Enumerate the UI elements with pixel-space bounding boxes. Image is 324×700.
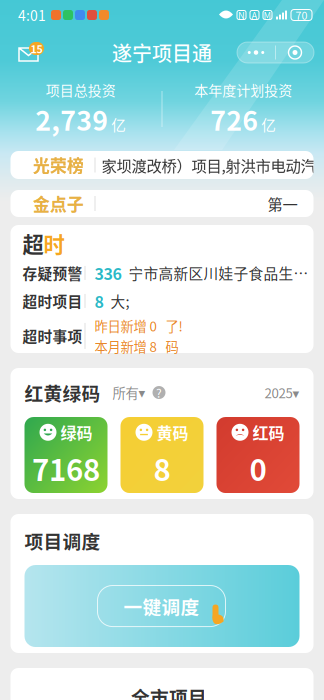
staticText: 金点子 [33,191,84,215]
staticText: 家坝渡改桥）项目,射洪市电动汽车; [101,154,324,176]
button[interactable]: More [237,42,314,63]
staticText: 2025▾ [264,383,299,402]
staticText: 昨日新增 0 了! [94,316,182,335]
staticText: 大; [110,290,129,311]
button[interactable]: 绿码 [24,417,107,493]
staticText: 本月新增 8 码 [94,336,178,356]
staticText: 超时事项 [22,325,82,346]
staticText: 时 [43,228,64,259]
staticText: 宁市高新区川娃子食品生产项目 [128,262,313,283]
staticText: M [263,8,271,22]
staticText: 所有▾ [112,383,145,402]
staticText: 15 [30,41,42,56]
button[interactable]: 红码 [216,417,299,493]
staticText: 2,739 [35,100,108,138]
staticText: 8 [94,289,103,313]
button[interactable]: 2025▾ [264,383,299,402]
staticText: 亿 [111,114,126,135]
button[interactable]: Help [145,386,165,399]
staticText: 金点子 [33,191,84,215]
staticText: 遂宁项目通 [112,38,212,67]
staticText: 第一 [267,192,297,215]
button[interactable]: Messages [12,39,50,65]
staticText: 8 [153,447,170,489]
staticText: 项目总投资 [46,80,116,100]
staticText: 0 [249,447,266,489]
staticText: ? [156,384,162,401]
staticText: 亿 [261,114,276,135]
staticText: 红码 [252,421,284,444]
staticText: N [238,8,245,22]
button[interactable]: 金点子 [10,190,313,217]
staticText: 黄码 [156,421,188,444]
staticText: 绿码 [60,421,92,444]
staticText: 光荣榜 [33,153,84,177]
staticText: 超时项目 [22,290,82,311]
button[interactable]: 所有▾ [100,383,145,402]
button[interactable]: 光荣榜 [10,151,313,179]
staticText: 726 [210,100,258,138]
staticText: A [251,8,257,22]
staticText: 一键调度 [123,592,199,619]
staticText: 超 [22,228,43,259]
staticText: 7168 [32,447,100,489]
staticText: 70 [295,7,307,23]
staticText: 光荣榜 [33,153,84,177]
staticText: 项目调度 [24,527,100,554]
staticText: 存疑预警 [22,262,82,283]
staticText: 红黄绿码 [24,379,100,406]
staticText: 全市项目 [131,683,207,700]
staticText: 4:01 [18,5,46,25]
staticText: 336 [94,261,121,285]
button[interactable]: 黄码 [120,417,203,493]
button[interactable]: 一键调度 [24,565,299,647]
staticText: 本年度计划投资 [194,80,292,100]
